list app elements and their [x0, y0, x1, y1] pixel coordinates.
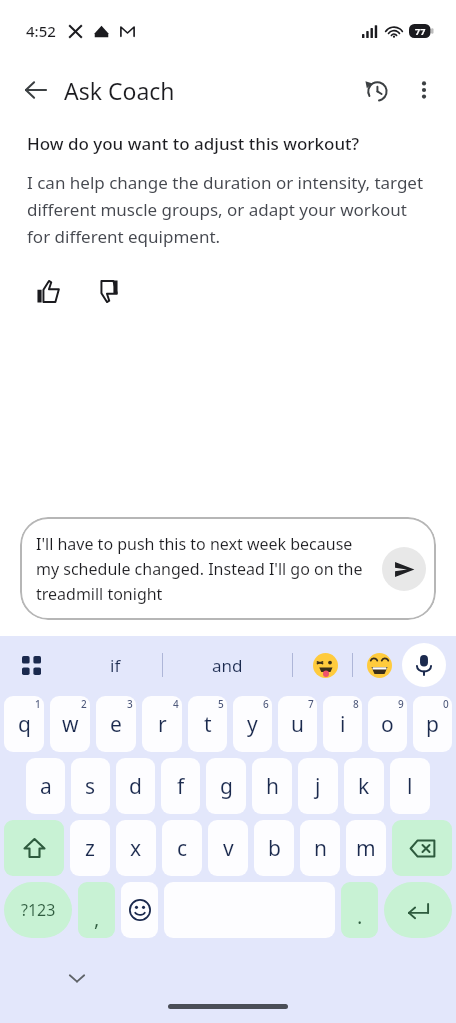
staticText: e	[110, 710, 122, 739]
staticText: u	[291, 710, 304, 739]
button[interactable]: More options	[400, 66, 448, 114]
button[interactable]: p	[413, 696, 452, 752]
staticText: j	[315, 772, 321, 801]
staticText: .	[357, 903, 363, 930]
staticText: 77	[415, 25, 426, 37]
button[interactable]: m	[346, 820, 386, 876]
staticText: ,	[94, 905, 100, 932]
button[interactable]: c	[162, 820, 202, 876]
button[interactable]: z	[70, 820, 110, 876]
staticText: I'll have to push this to next week beca…	[36, 533, 374, 604]
staticText: p	[426, 710, 439, 739]
staticText: f	[177, 772, 185, 801]
button[interactable]: q	[4, 696, 44, 752]
button[interactable]: g	[206, 758, 246, 814]
button[interactable]: w	[50, 696, 90, 752]
staticText: 4:52	[26, 21, 56, 41]
staticText: 2	[81, 697, 87, 711]
button[interactable]: Emoji grin	[362, 648, 396, 682]
staticText: m	[356, 834, 376, 863]
button[interactable]: s	[71, 758, 110, 814]
staticText: 1	[35, 697, 41, 711]
staticText: z	[85, 834, 95, 863]
button[interactable]: a	[26, 758, 65, 814]
button[interactable]: e	[96, 696, 136, 752]
button[interactable]: v	[208, 820, 248, 876]
button[interactable]: .	[341, 882, 378, 938]
staticText: h	[266, 772, 279, 801]
staticText: i	[340, 710, 346, 739]
button[interactable]: Enter	[384, 882, 452, 938]
staticText: 8	[353, 697, 359, 711]
button[interactable]: ?123	[4, 882, 72, 938]
button[interactable]: x	[116, 820, 156, 876]
staticText: x	[130, 834, 142, 863]
staticText: I can help change the duration or intens…	[27, 171, 429, 248]
button[interactable]: and	[186, 643, 268, 687]
button[interactable]: h	[252, 758, 292, 814]
staticText: k	[358, 772, 370, 801]
staticText: g	[220, 772, 233, 801]
button[interactable]: d	[116, 758, 155, 814]
button[interactable]: Backspace	[392, 820, 452, 876]
button[interactable]: ,	[78, 882, 115, 938]
staticText: 5	[218, 697, 224, 711]
staticText: c	[177, 834, 188, 863]
staticText: s	[85, 772, 96, 801]
staticText: and	[212, 654, 243, 677]
staticText: o	[381, 710, 394, 739]
button[interactable]: r	[142, 696, 182, 752]
staticText: t	[204, 710, 212, 739]
staticText: y	[247, 710, 258, 739]
button[interactable]: l	[390, 758, 430, 814]
staticText: How do you want to adjust this workout?	[27, 132, 360, 155]
button[interactable]: t	[188, 696, 227, 752]
button[interactable]: I'll have to push this to next week beca…	[20, 517, 436, 620]
button[interactable]: i	[323, 696, 362, 752]
button[interactable]: Emoji	[121, 882, 158, 938]
button[interactable]: if	[75, 643, 155, 687]
staticText: r	[158, 710, 167, 739]
button[interactable]: y	[233, 696, 272, 752]
button[interactable]: Hide keyboard	[60, 961, 94, 995]
staticText: w	[62, 710, 79, 739]
button[interactable]: u	[278, 696, 317, 752]
staticText: 4	[173, 697, 179, 711]
staticText: 9	[398, 697, 404, 711]
staticText: 6	[263, 697, 269, 711]
button[interactable]: Shift	[4, 820, 64, 876]
staticText: ?123	[21, 899, 56, 921]
button[interactable]: b	[254, 820, 294, 876]
staticText: q	[18, 710, 31, 739]
staticText: a	[40, 772, 52, 801]
button[interactable]: n	[300, 820, 340, 876]
staticText: b	[268, 834, 281, 863]
button[interactable]: Thumbs down	[85, 270, 127, 312]
button[interactable]: j	[298, 758, 338, 814]
button[interactable]: Toolbar	[10, 644, 52, 686]
staticText: n	[314, 834, 327, 863]
staticText: 3	[127, 697, 133, 711]
button[interactable]: Send	[382, 547, 426, 591]
staticText: 0	[443, 697, 449, 711]
button[interactable]: History	[352, 66, 400, 114]
button[interactable]: Voice input	[402, 643, 446, 687]
button[interactable]: Emoji tongue	[308, 648, 342, 682]
staticText: Ask Coach	[64, 75, 175, 106]
staticText: v	[223, 834, 234, 863]
button[interactable]: Back	[12, 66, 60, 114]
button[interactable]: f	[161, 758, 200, 814]
button[interactable]: k	[344, 758, 384, 814]
staticText: 7	[308, 697, 314, 711]
staticText: d	[129, 772, 142, 801]
staticText: l	[407, 772, 413, 801]
button[interactable]: Thumbs up	[27, 270, 69, 312]
staticText: if	[110, 654, 121, 677]
button[interactable]: o	[368, 696, 407, 752]
